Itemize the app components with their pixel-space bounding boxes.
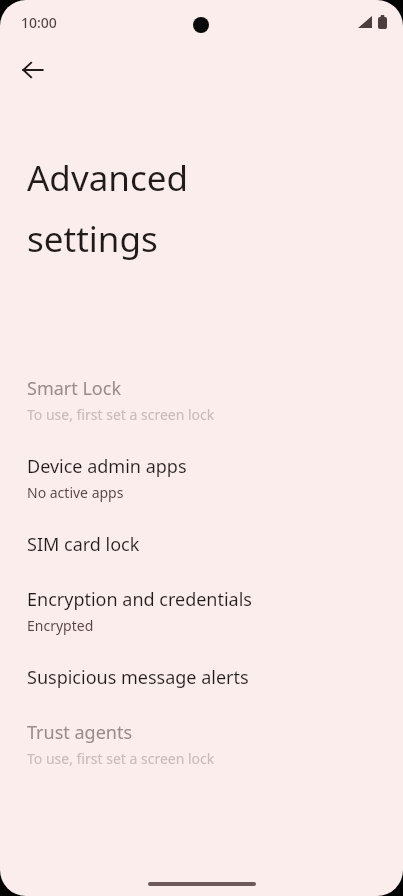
staticText: Trust agents <box>27 720 133 745</box>
button[interactable]: Trust agents <box>0 705 403 783</box>
staticText: 10:00 <box>21 13 57 32</box>
staticText: Smart Lock <box>27 376 121 401</box>
staticText: Suspicious message alerts <box>27 665 249 690</box>
staticText: To use, first set a screen lock <box>27 405 215 424</box>
staticText: Advanced <box>27 154 189 202</box>
staticText: To use, first set a screen lock <box>27 749 215 768</box>
button[interactable]: SIM card lock <box>0 517 403 572</box>
staticText: No active apps <box>27 483 124 502</box>
staticText: Encryption and credentials <box>27 587 252 612</box>
staticText: Device admin apps <box>27 454 187 479</box>
staticText: Encrypted <box>27 616 94 635</box>
staticText: SIM card lock <box>27 532 140 557</box>
button[interactable]: Suspicious message alerts <box>0 650 403 705</box>
button[interactable]: Encryption and credentials <box>0 572 403 650</box>
button[interactable]: Back <box>9 46 57 94</box>
button[interactable]: Device admin apps <box>0 439 403 517</box>
staticText: settings <box>27 215 158 263</box>
button[interactable]: Smart Lock <box>0 361 403 439</box>
